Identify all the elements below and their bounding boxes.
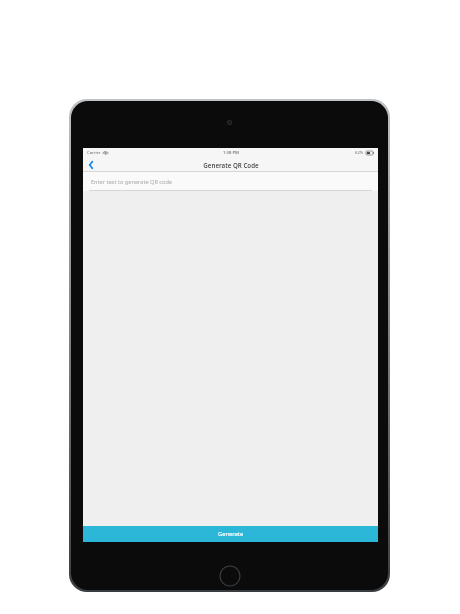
staticText: 62% <box>355 150 364 156</box>
button[interactable]: Enter text to generate QR code <box>83 172 378 191</box>
staticText: 1:38 PM <box>223 150 239 156</box>
staticText: Generate QR Code <box>203 161 259 169</box>
staticText: Enter text to generate QR code <box>91 178 172 186</box>
button[interactable]: Generate <box>83 526 378 542</box>
staticText: Carrier <box>87 150 101 156</box>
staticText: Generate <box>218 530 244 538</box>
button[interactable]: Back <box>85 158 97 172</box>
